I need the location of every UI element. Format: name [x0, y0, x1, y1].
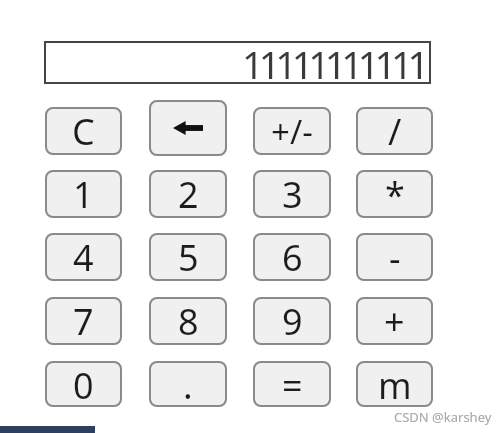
button[interactable]: 1: [45, 170, 122, 218]
staticText: 6: [282, 233, 303, 281]
staticText: 4: [73, 233, 94, 281]
button[interactable]: 6: [253, 233, 331, 281]
button[interactable]: 7: [45, 297, 122, 345]
staticText: m: [378, 361, 412, 407]
button[interactable]: +: [356, 297, 433, 345]
button[interactable]: 2: [149, 170, 227, 218]
button[interactable]: *: [356, 170, 433, 218]
button[interactable]: 3: [253, 170, 331, 218]
button[interactable]: /: [356, 107, 433, 155]
button[interactable]: 0: [45, 361, 122, 407]
staticText: =: [282, 361, 303, 407]
button[interactable]: 9: [253, 297, 331, 345]
staticText: C: [72, 107, 95, 155]
staticText: *: [385, 170, 405, 218]
staticText: 9: [282, 297, 303, 345]
staticText: 2: [178, 170, 199, 218]
staticText: +/-: [271, 109, 313, 154]
button[interactable]: +/-: [253, 107, 331, 155]
button[interactable]: 5: [149, 233, 227, 281]
staticText: 0: [73, 361, 94, 407]
button[interactable]: [149, 100, 227, 156]
staticText: 5: [178, 233, 199, 281]
staticText: 3: [282, 170, 303, 218]
staticText: /: [388, 107, 402, 155]
button[interactable]: C: [45, 107, 122, 155]
button[interactable]: 8: [149, 297, 227, 345]
staticText: CSDN @karshey: [394, 408, 492, 426]
staticText: 7: [73, 297, 94, 345]
staticText: -: [389, 233, 401, 281]
button[interactable]: .: [149, 361, 227, 407]
staticText: .: [183, 361, 193, 407]
button[interactable]: 4: [45, 233, 122, 281]
staticText: +: [384, 297, 405, 345]
staticText: 8: [178, 297, 199, 345]
button[interactable]: -: [356, 233, 433, 281]
staticText: 11111111111: [242, 38, 424, 81]
button[interactable]: m: [356, 361, 433, 407]
staticText: 1: [73, 170, 94, 218]
button[interactable]: =: [253, 361, 331, 407]
